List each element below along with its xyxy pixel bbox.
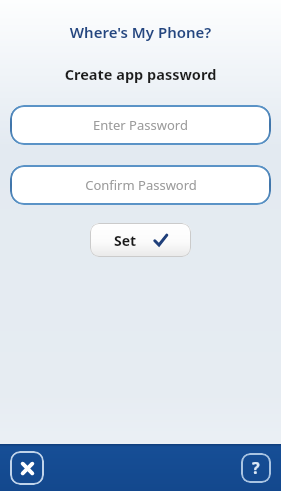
button[interactable]: Set xyxy=(90,223,191,257)
button[interactable]: Confirm Password xyxy=(10,165,271,205)
staticText: ? xyxy=(252,457,260,479)
staticText: Confirm Password xyxy=(85,176,197,194)
button[interactable]: Enter Password xyxy=(10,105,271,145)
staticText: Create app password xyxy=(0,64,281,84)
staticText: Set xyxy=(114,231,137,250)
staticText: Enter Password xyxy=(93,116,188,134)
staticText: Where's My Phone? xyxy=(0,22,281,42)
button[interactable]: Help xyxy=(241,453,271,483)
button[interactable]: Close xyxy=(10,451,44,485)
